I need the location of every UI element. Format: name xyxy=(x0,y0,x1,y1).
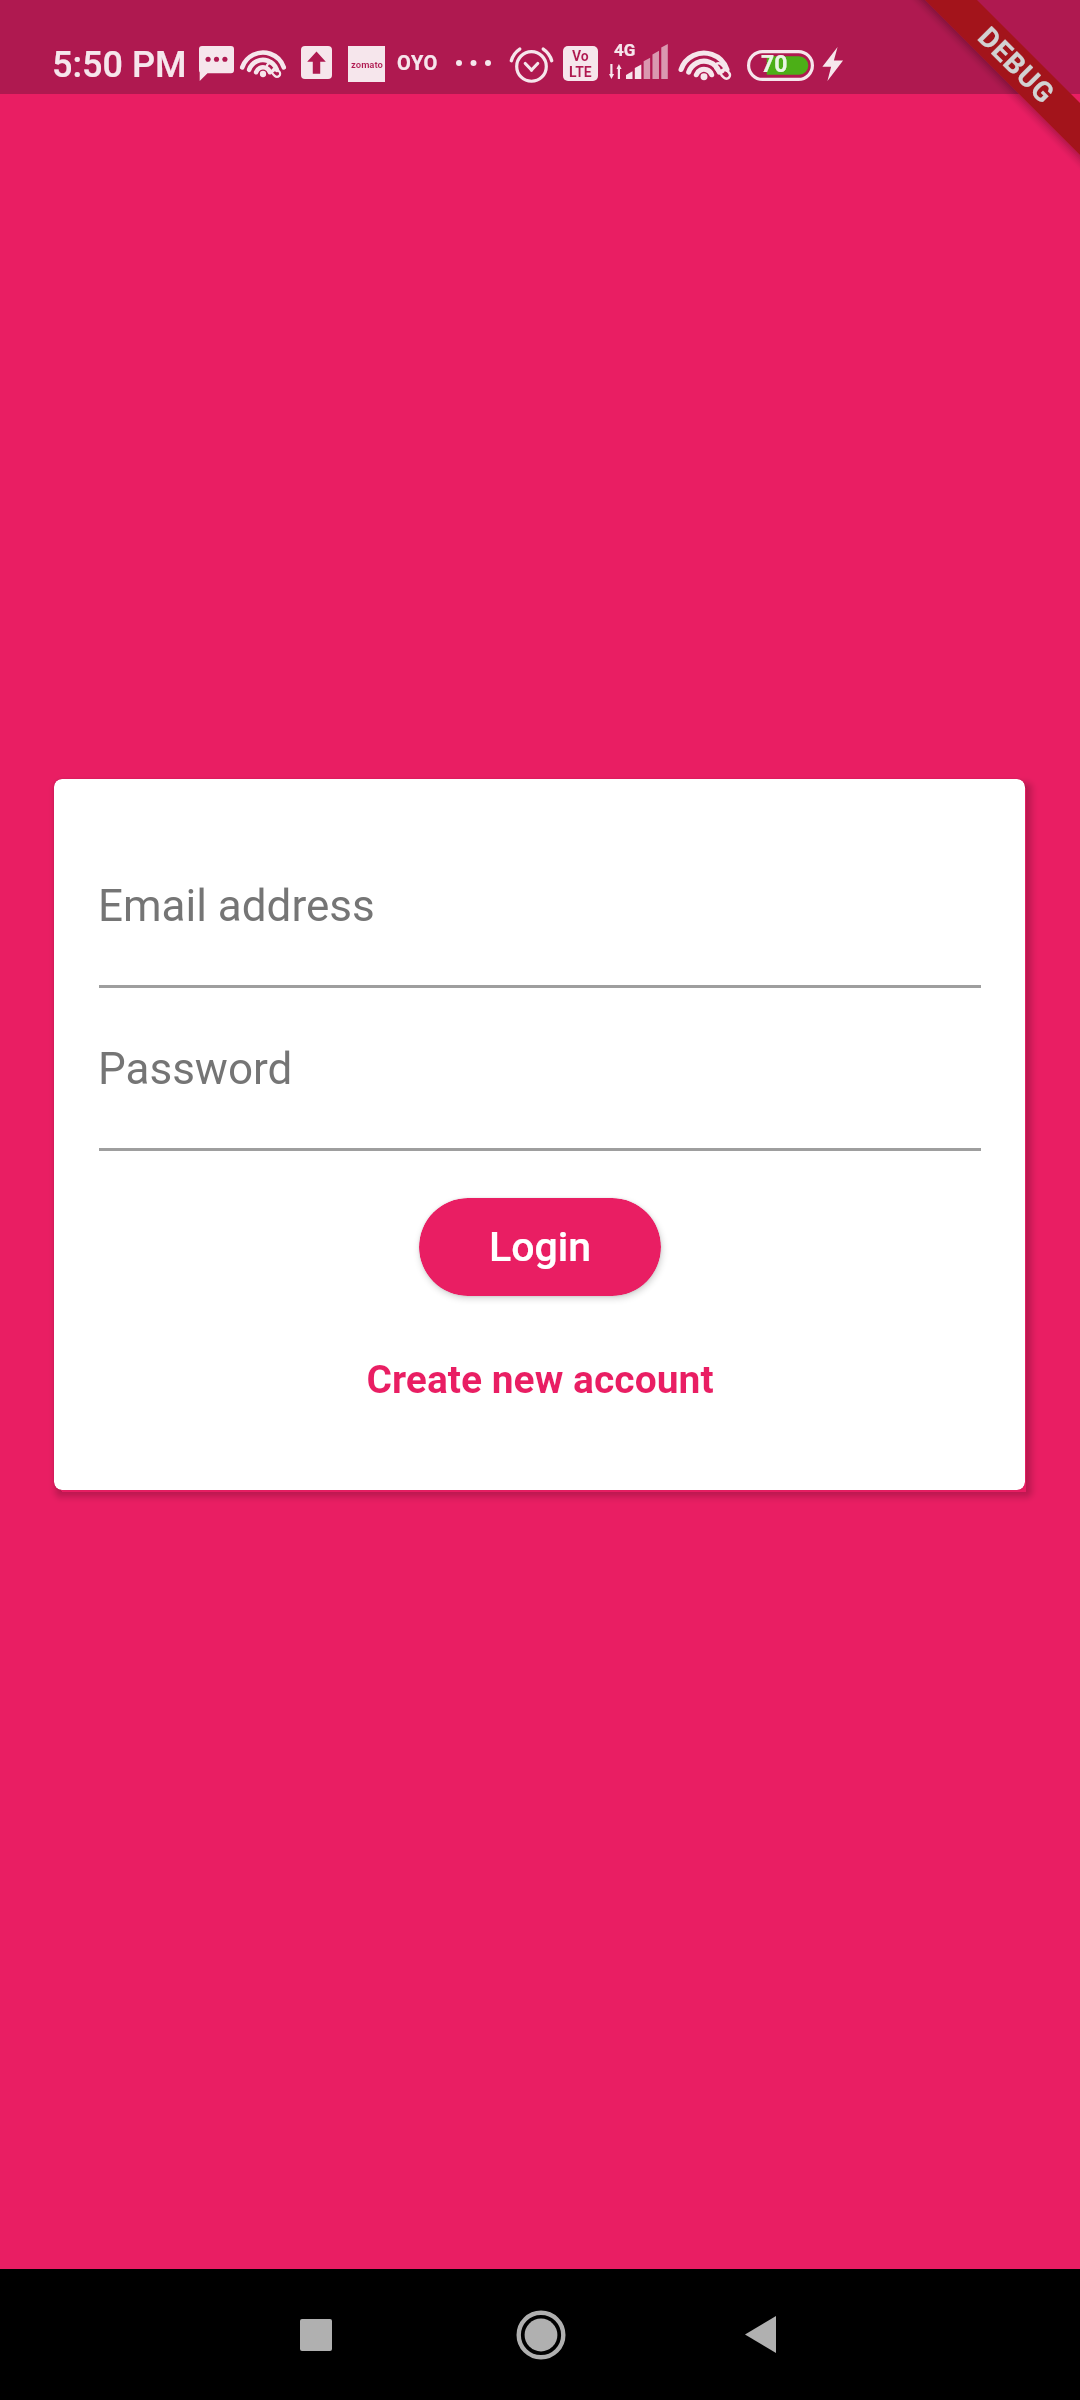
staticText: Create new account xyxy=(366,1357,714,1403)
button[interactable]: Email address xyxy=(99,874,981,988)
staticText: 5:50 PM xyxy=(52,44,187,86)
button[interactable]: Home xyxy=(481,2284,601,2385)
button[interactable]: Login xyxy=(419,1198,661,1296)
button[interactable]: Back xyxy=(700,2284,820,2385)
staticText: Login xyxy=(489,1223,592,1271)
button[interactable]: Create new account xyxy=(54,1357,1025,1403)
staticText: 4G xyxy=(614,40,636,60)
button[interactable]: Recents xyxy=(256,2284,376,2385)
button[interactable]: Password xyxy=(99,1037,981,1151)
staticText: LTE xyxy=(569,64,592,80)
staticText: DEBUG xyxy=(971,20,1062,111)
staticText: OYO xyxy=(397,51,438,74)
staticText: zomato xyxy=(351,59,383,70)
staticText: Password xyxy=(98,1043,293,1095)
staticText: 70 xyxy=(761,51,788,78)
staticText: Vo xyxy=(572,48,589,64)
staticText: Email address xyxy=(98,880,375,932)
